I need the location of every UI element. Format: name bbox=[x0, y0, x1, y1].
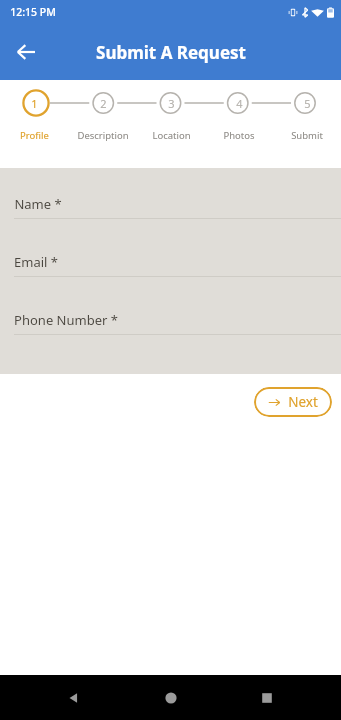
staticText: Description bbox=[77, 129, 129, 142]
staticText: 5 bbox=[304, 96, 311, 111]
button[interactable]: Profile bbox=[0, 129, 69, 142]
staticText: Name * bbox=[14, 195, 62, 213]
button[interactable]: Home bbox=[149, 676, 193, 720]
staticText: 2 bbox=[100, 96, 107, 111]
staticText: 1 bbox=[31, 96, 38, 111]
button[interactable]: Submit bbox=[273, 129, 341, 142]
button[interactable]: Name * bbox=[0, 190, 341, 219]
staticText: 12:15 PM bbox=[10, 5, 56, 19]
button[interactable]: Next bbox=[254, 387, 332, 417]
button[interactable]: Phone Number * bbox=[0, 306, 341, 335]
button[interactable]: Photos bbox=[205, 129, 273, 142]
staticText: Submit A Request bbox=[96, 41, 246, 64]
staticText: 4 bbox=[236, 96, 243, 111]
button[interactable]: Description bbox=[69, 129, 137, 142]
staticText: Location bbox=[152, 129, 191, 142]
button[interactable]: Back bbox=[3, 29, 49, 75]
staticText: Phone Number * bbox=[14, 311, 118, 329]
button[interactable]: Email * bbox=[0, 248, 341, 277]
staticText: Next bbox=[288, 393, 318, 411]
staticText: Profile bbox=[20, 129, 49, 142]
staticText: Email * bbox=[14, 253, 58, 271]
button[interactable]: Recents bbox=[245, 676, 289, 720]
button[interactable]: Location bbox=[137, 129, 205, 142]
staticText: Photos bbox=[223, 129, 255, 142]
staticText: Submit bbox=[291, 129, 323, 142]
button[interactable]: Back bbox=[52, 676, 96, 720]
staticText: 3 bbox=[168, 96, 175, 111]
